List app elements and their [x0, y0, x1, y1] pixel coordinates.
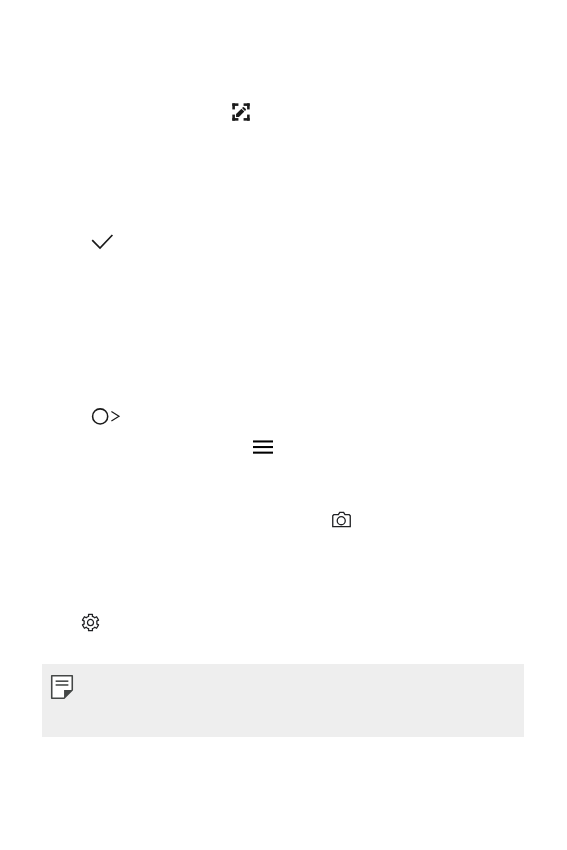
button[interactable]: Done — [90, 229, 114, 253]
button[interactable]: Camera — [331, 509, 352, 530]
button[interactable] — [42, 664, 524, 737]
button[interactable]: Next — [90, 405, 124, 427]
button[interactable]: Scan and edit — [231, 102, 251, 122]
button[interactable]: Settings — [80, 612, 101, 633]
button[interactable]: Menu — [251, 436, 275, 458]
